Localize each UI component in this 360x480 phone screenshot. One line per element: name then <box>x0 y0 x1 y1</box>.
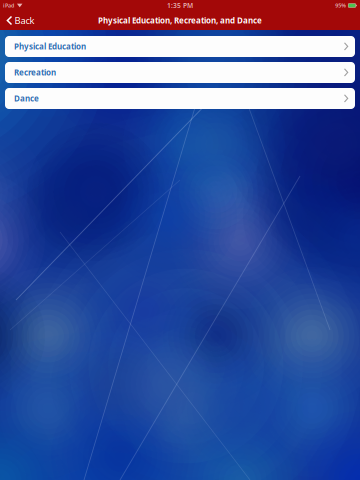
button[interactable]: Back <box>0 11 38 30</box>
staticText: Physical Education, Recreation, and Danc… <box>98 15 262 26</box>
staticText: Dance <box>14 93 39 104</box>
button[interactable]: Dance <box>5 88 355 109</box>
staticText: 1:35 PM <box>167 1 193 10</box>
staticText: Recreation <box>14 67 56 78</box>
button[interactable]: Recreation <box>5 62 355 83</box>
staticText: Back <box>14 14 34 27</box>
staticText: 95% <box>335 2 346 9</box>
staticText: iPad <box>3 2 14 9</box>
staticText: Physical Education <box>14 41 86 52</box>
button[interactable]: Physical Education <box>5 36 355 57</box>
